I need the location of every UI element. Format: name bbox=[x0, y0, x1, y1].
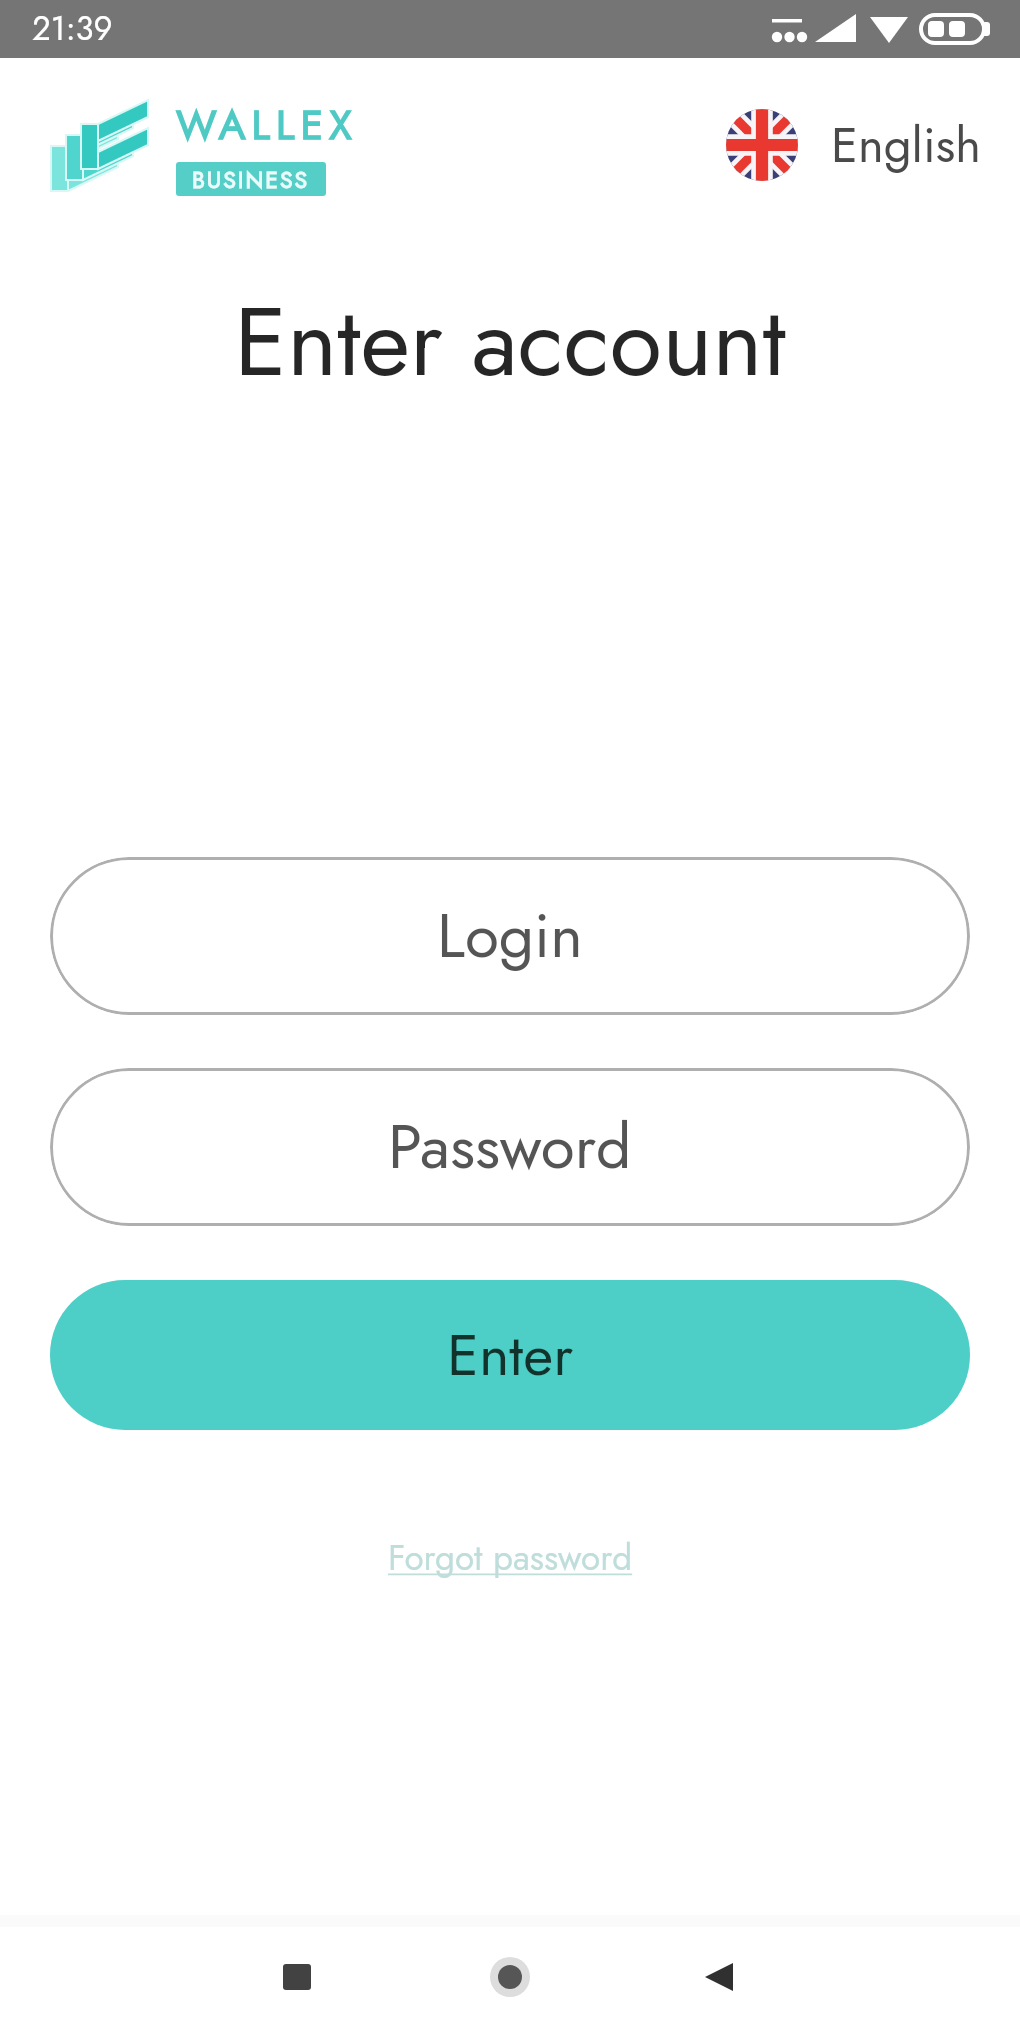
staticText: 21:39 bbox=[32, 5, 113, 53]
button[interactable]: Recent apps bbox=[241, 1921, 353, 2033]
button[interactable]: Forgot password bbox=[0, 1533, 1020, 1584]
button[interactable]: Wallex Business bbox=[48, 88, 358, 202]
staticText: Password bbox=[388, 1102, 632, 1192]
staticText: Enter account bbox=[0, 272, 1020, 411]
button[interactable]: Login bbox=[50, 857, 970, 1015]
button[interactable]: Enter bbox=[50, 1280, 970, 1430]
button[interactable]: Password bbox=[50, 1068, 970, 1226]
staticText: BUSINESS bbox=[192, 163, 310, 196]
staticText: Login bbox=[437, 891, 583, 981]
staticText: Enter bbox=[447, 1313, 574, 1397]
button[interactable]: Back bbox=[663, 1921, 775, 2033]
staticText: WALLEX bbox=[176, 95, 358, 154]
button[interactable]: English bbox=[726, 109, 982, 181]
staticText: Forgot password bbox=[388, 1533, 633, 1584]
staticText: English bbox=[831, 110, 982, 181]
button[interactable]: Home bbox=[454, 1921, 566, 2033]
